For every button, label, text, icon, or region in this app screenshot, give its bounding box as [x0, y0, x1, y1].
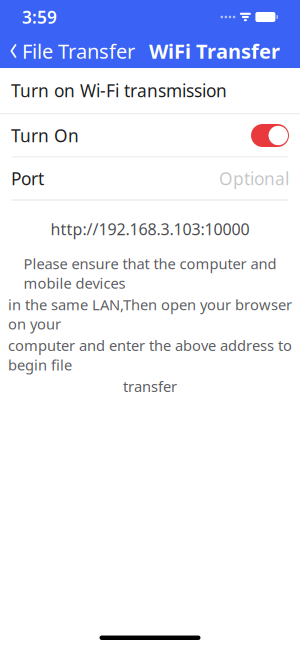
button[interactable]: Turn On: [0, 114, 300, 156]
staticText: computer and enter the above address to …: [8, 336, 292, 375]
staticText: WiFi Transfer: [149, 38, 280, 64]
button[interactable]: File Transfer: [0, 34, 139, 68]
staticText: Please ensure that the computer and mobi…: [23, 254, 276, 293]
staticText: 3:59: [22, 5, 57, 28]
staticText: File Transfer: [22, 38, 135, 64]
staticText: http://192.168.3.103:10000: [50, 218, 249, 240]
staticText: transfer: [123, 377, 177, 396]
staticText: Turn On: [11, 124, 79, 147]
staticText: Port: [11, 167, 44, 190]
staticText: Turn on Wi-Fi transmission: [11, 79, 227, 102]
staticText: in the same LAN,Then open your browser o…: [8, 295, 292, 334]
staticText: Optional: [219, 167, 289, 190]
button[interactable]: Port: [0, 157, 300, 199]
